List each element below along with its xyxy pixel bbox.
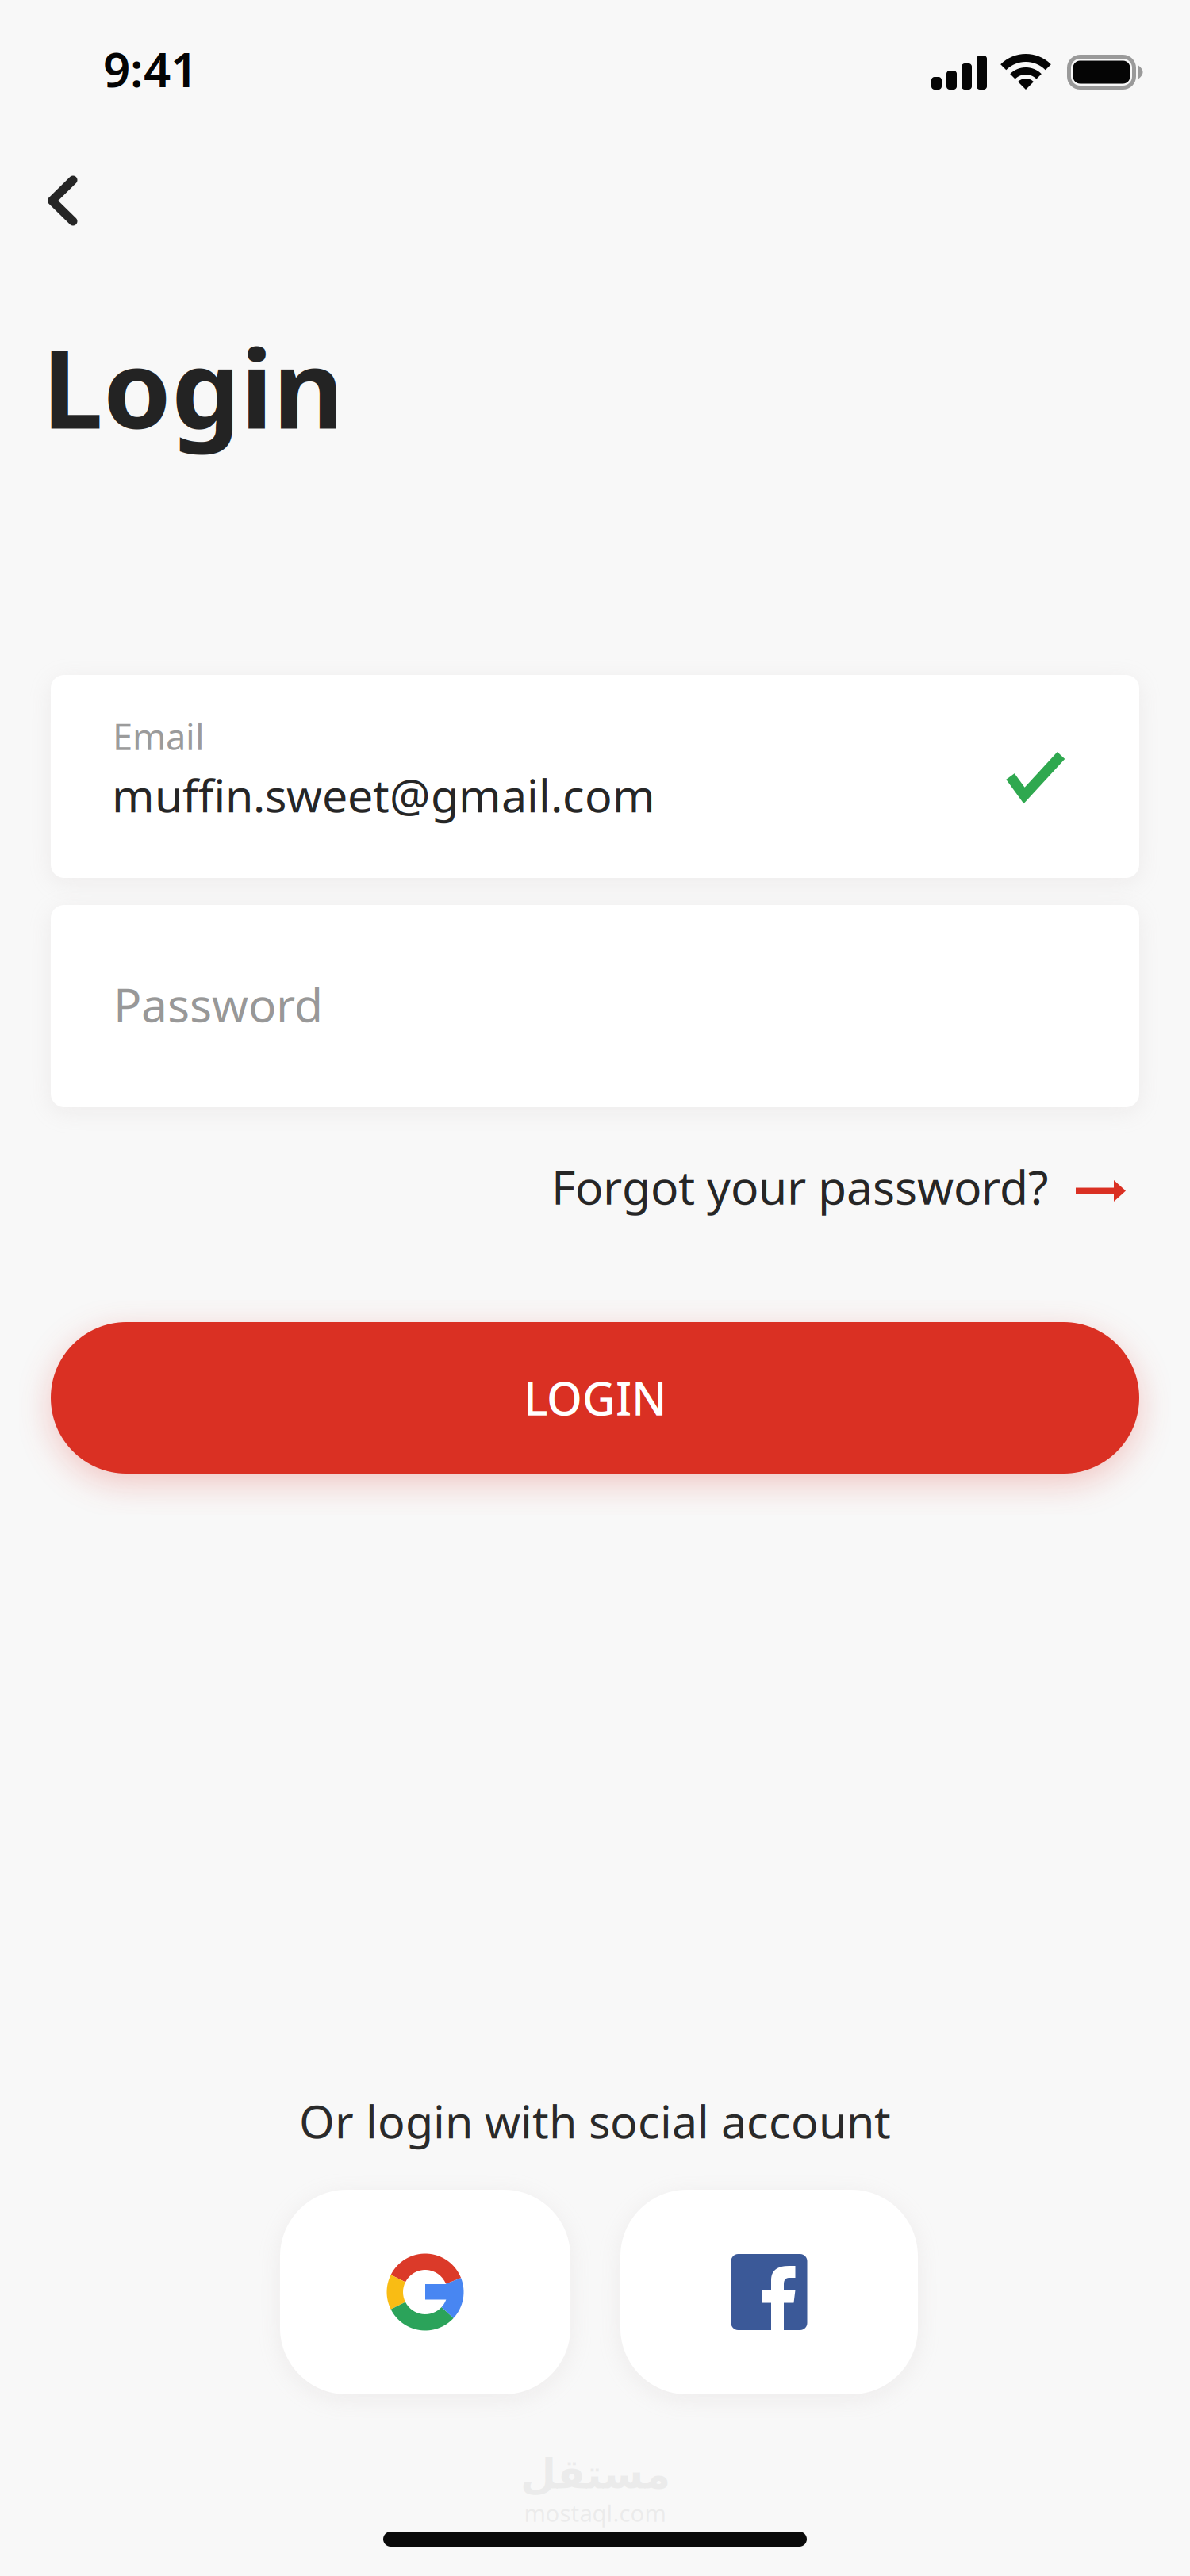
staticText: Password	[113, 973, 323, 1035]
staticText: Login	[42, 314, 344, 459]
staticText: mostaql.com	[524, 2497, 666, 2528]
staticText: Forgot your password?	[551, 1156, 1048, 1217]
button[interactable]: Email	[51, 675, 1139, 878]
button[interactable]: Continue with Google	[280, 2190, 570, 2394]
staticText: muffin.sweet@gmail.com	[112, 765, 655, 825]
staticText: LOGIN	[524, 1368, 666, 1428]
button[interactable]: Back	[11, 149, 114, 252]
button[interactable]: LOGIN	[51, 1322, 1139, 1474]
staticText: Email	[113, 712, 205, 760]
staticText: 9:41	[103, 37, 198, 100]
button[interactable]: Continue with Facebook	[620, 2190, 918, 2394]
staticText: Or login with social account	[299, 2091, 891, 2151]
button[interactable]: Password	[51, 905, 1139, 1107]
staticText: مستقل	[520, 2451, 670, 2497]
button[interactable]: Forgot your password?	[551, 1162, 1126, 1211]
